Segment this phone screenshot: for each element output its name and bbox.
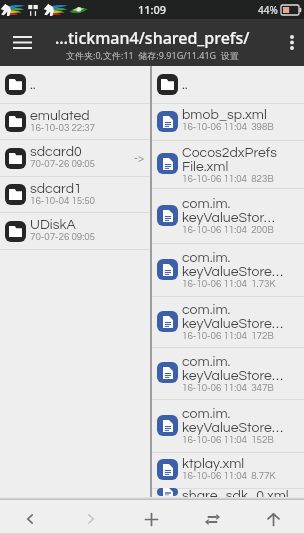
button[interactable]: ktplay.xml	[152, 453, 304, 488]
staticText: keyValueStore…	[182, 265, 283, 279]
button[interactable]: com.im.	[152, 348, 304, 399]
staticText: 16-10-06 11:04 200B	[182, 225, 274, 235]
staticText: com.im.	[182, 407, 231, 421]
staticText: 11:09	[138, 2, 167, 17]
staticText: UDiskA	[30, 218, 76, 232]
button[interactable]: More options	[280, 19, 304, 66]
button[interactable]: com.im.	[152, 244, 304, 296]
button[interactable]: com.im.	[152, 400, 304, 452]
staticText: 70-07-26 09:05	[30, 232, 96, 242]
staticText: com.im.	[182, 355, 231, 369]
staticText: 16-10-06 11:04 152B	[182, 435, 274, 445]
button[interactable]: Switch panes	[182, 505, 243, 533]
staticText: com.im.	[182, 197, 231, 211]
staticText: keyValueStore…	[182, 317, 283, 331]
staticText: ..	[30, 78, 36, 92]
staticText: 16-10-04 15:50	[30, 196, 96, 206]
button[interactable]: Up	[243, 505, 304, 533]
button[interactable]: Menu	[0, 19, 44, 66]
staticText: 16-10-06 11:04 8.77K	[182, 471, 276, 481]
staticText: keyValueStore…	[182, 369, 283, 383]
staticText: 16-10-06 11:04 347B	[182, 383, 274, 393]
button[interactable]: sdcard0	[0, 140, 150, 176]
staticText: keyValueStor…	[182, 211, 275, 225]
staticText: 16-10-06 11:04 1.73K	[182, 279, 276, 289]
button[interactable]: com.im.	[152, 189, 304, 243]
staticText: bmob_sp.xml	[182, 108, 267, 122]
button[interactable]: ..	[0, 66, 150, 103]
button[interactable]: Cocos2dxPrefs	[152, 141, 304, 188]
button[interactable]: com.im.	[152, 297, 304, 347]
button[interactable]: ..	[152, 66, 304, 103]
staticText: com.im.	[182, 251, 231, 265]
staticText: Cocos2dxPrefs	[182, 146, 277, 160]
button[interactable]: bmob_sp.xml	[152, 104, 304, 140]
staticText: …tickman4/shared_prefs/	[55, 27, 250, 49]
button[interactable]: share_sdk_0.xml	[152, 489, 304, 497]
staticText: ..	[182, 78, 188, 92]
button[interactable]: UDiskA	[0, 213, 150, 249]
staticText: 16-10-06 11:04 172B	[182, 331, 274, 341]
staticText: File.xml	[182, 160, 229, 174]
staticText: sdcard0	[30, 145, 82, 159]
staticText: emulated	[30, 109, 90, 123]
staticText: sdcard1	[30, 182, 82, 196]
staticText: 16-10-06 11:04 398B	[182, 122, 274, 132]
staticText: keyValueStore…	[182, 421, 283, 435]
button[interactable]: Forward	[60, 505, 121, 533]
button[interactable]: sdcard1	[0, 177, 150, 212]
staticText: 文件夹:0,文件:11 储存:9.91G/11.41G 设置	[66, 49, 239, 61]
button[interactable]: Back	[0, 505, 60, 533]
staticText: ktplay.xml	[182, 457, 245, 471]
staticText: 44%	[258, 3, 278, 17]
staticText: share_sdk_0.xml	[182, 489, 289, 497]
staticText: 70-07-26 09:05	[30, 159, 96, 169]
staticText: ->	[134, 153, 145, 164]
button[interactable]: New	[121, 505, 182, 533]
staticText: 16-10-06 11:04 823B	[182, 174, 274, 184]
staticText: com.im.	[182, 303, 231, 317]
staticText: 16-10-03 22:37	[30, 123, 96, 133]
button[interactable]: emulated	[0, 104, 150, 139]
